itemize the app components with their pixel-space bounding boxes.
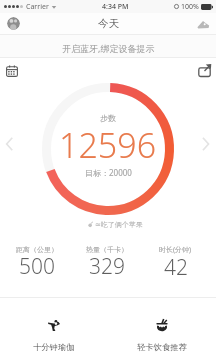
button[interactable]: 十分钟瑜伽: [0, 298, 108, 360]
staticText: 热量（千卡）: [86, 245, 128, 254]
button[interactable]: 时长(分钟): [141, 245, 210, 284]
staticText: 时长(分钟): [159, 245, 192, 255]
staticText: Carrier: [26, 2, 49, 12]
staticText: 步数: [100, 113, 116, 123]
button[interactable]: 热量（千卡）: [72, 245, 141, 283]
button[interactable]: Next day: [197, 135, 215, 153]
button[interactable]: Previous day: [0, 135, 18, 153]
button[interactable]: Activity: [196, 17, 210, 31]
button[interactable]: Share: [198, 64, 211, 77]
button[interactable]: Profile: [7, 17, 20, 30]
staticText: 开启蓝牙,绑定设备提示: [62, 42, 155, 54]
staticText: 今天: [98, 17, 119, 30]
staticText: 轻卡饮食推荐: [137, 342, 187, 352]
staticText: 目标：20000: [85, 167, 132, 178]
button[interactable]: Calendar: [6, 65, 18, 77]
staticText: 12596: [59, 122, 157, 168]
staticText: 4:34 PM: [102, 2, 129, 12]
staticText: 100%: [181, 2, 199, 12]
staticText: 十分钟瑜伽: [33, 342, 75, 352]
button[interactable]: 距离（公里）: [2, 245, 72, 283]
staticText: 42: [164, 253, 188, 282]
staticText: 距离（公里）: [16, 245, 58, 254]
staticText: 329: [89, 252, 125, 281]
button[interactable]: 开启蓝牙,绑定设备提示: [0, 35, 216, 57]
staticText: ≈吃了俩个苹果: [95, 220, 143, 229]
button[interactable]: 轻卡饮食推荐: [108, 298, 216, 360]
staticText: 500: [19, 252, 55, 281]
